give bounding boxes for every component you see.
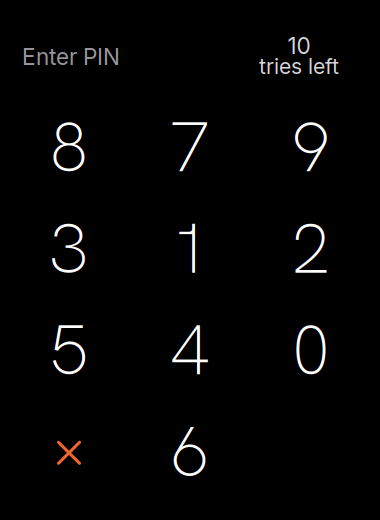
staticText: 10 xyxy=(287,32,310,59)
staticText: Enter PIN xyxy=(22,43,120,70)
button[interactable]: 2 xyxy=(255,208,367,290)
staticText: 9 xyxy=(291,102,330,192)
staticText: 2 xyxy=(291,203,330,294)
button[interactable]: 5 xyxy=(13,309,125,391)
button[interactable]: 7 xyxy=(134,106,246,188)
staticText: 0 xyxy=(291,305,330,395)
staticText: 8 xyxy=(49,102,88,192)
staticText: 3 xyxy=(49,203,88,294)
button[interactable]: 3 xyxy=(13,208,125,290)
button[interactable]: 4 xyxy=(134,309,246,391)
staticText: tries left xyxy=(259,53,339,79)
staticText: 1 xyxy=(170,203,209,294)
button[interactable]: 9 xyxy=(255,106,367,188)
staticText: 7 xyxy=(170,102,209,192)
staticText: 4 xyxy=(170,305,209,395)
button[interactable]: 6 xyxy=(134,411,246,493)
button[interactable]: 8 xyxy=(13,106,125,188)
button[interactable]: Delete xyxy=(13,411,125,493)
button[interactable]: 1 xyxy=(134,208,246,290)
button[interactable]: 0 xyxy=(255,309,367,391)
staticText: 5 xyxy=(49,305,88,395)
staticText: 6 xyxy=(170,407,209,497)
